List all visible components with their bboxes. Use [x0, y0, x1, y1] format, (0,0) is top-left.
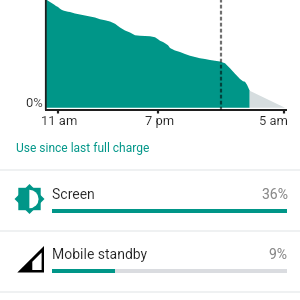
staticText: 5 am [259, 113, 289, 128]
button[interactable]: Mobile standby [0, 229, 300, 290]
staticText: 11 am [41, 113, 78, 128]
staticText: Use since last full charge [16, 141, 150, 155]
button[interactable]: Use since last full charge [16, 141, 150, 155]
staticText: Mobile standby [52, 246, 148, 262]
staticText: 36% [262, 186, 288, 202]
staticText: 7 pm [145, 113, 175, 128]
staticText: Screen [52, 186, 95, 202]
staticText: 9% [269, 246, 288, 262]
staticText: 0% [26, 95, 43, 110]
button[interactable]: Screen [0, 169, 300, 230]
